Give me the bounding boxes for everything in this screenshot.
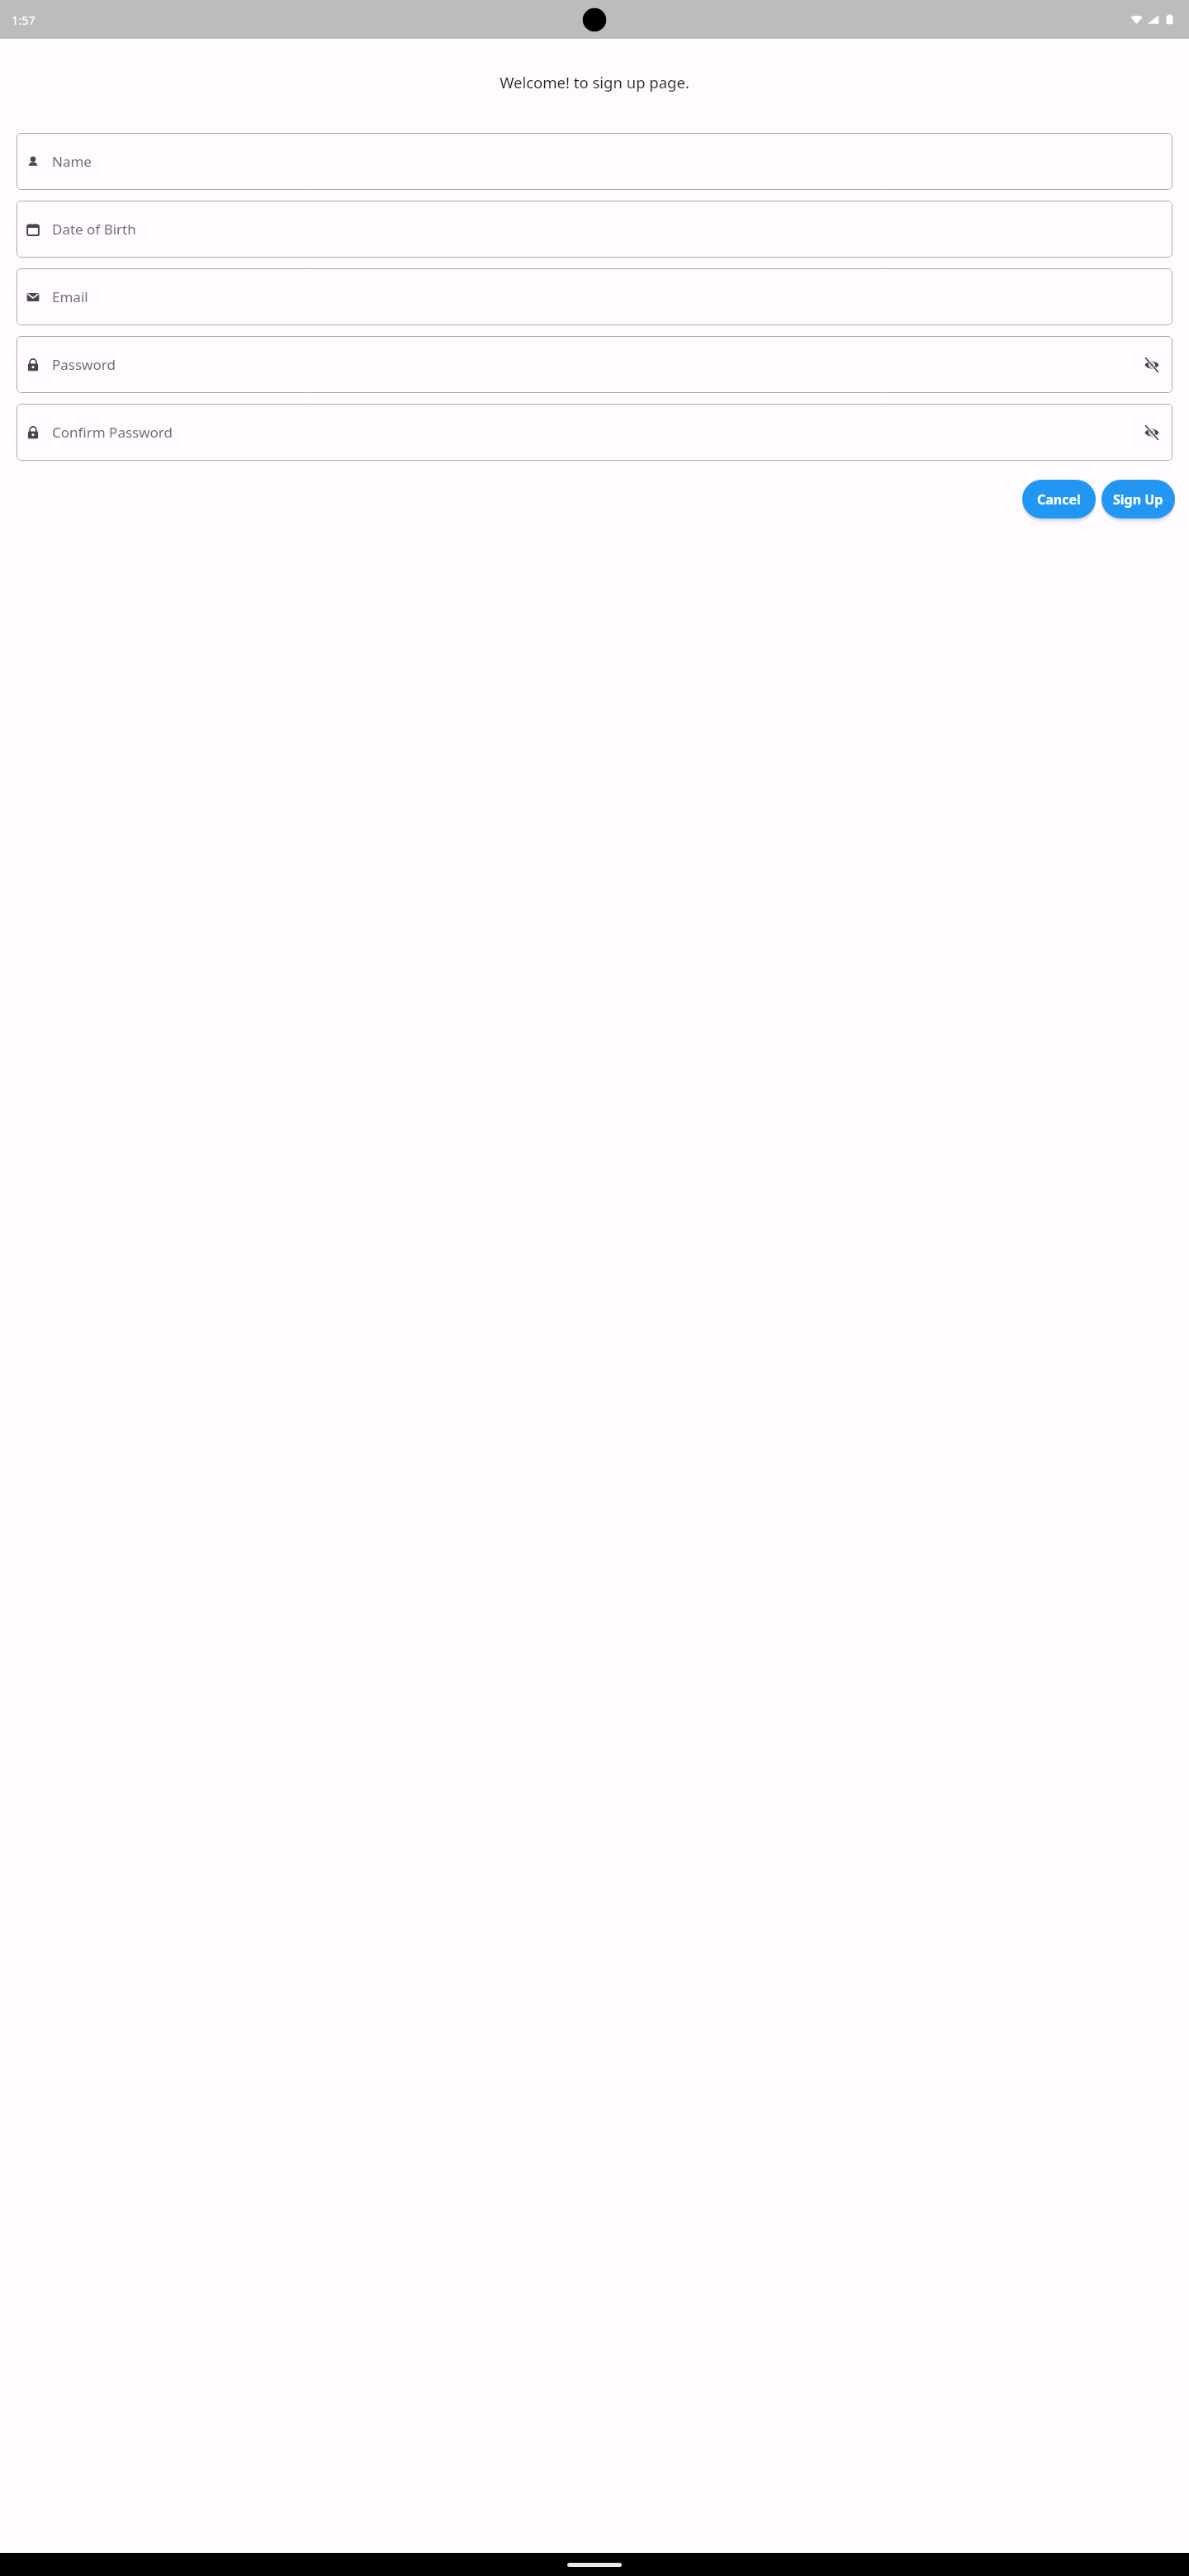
staticText: Sign Up bbox=[1113, 490, 1163, 509]
staticText: Cancel bbox=[1037, 490, 1081, 509]
button[interactable]: Confirm Password bbox=[17, 404, 1172, 461]
staticText: Password bbox=[52, 355, 116, 374]
staticText: Welcome! to sign up page. bbox=[500, 72, 689, 92]
button[interactable]: Email bbox=[17, 268, 1172, 325]
button[interactable]: Name bbox=[17, 133, 1172, 190]
staticText: Date of Birth bbox=[52, 220, 136, 239]
staticText: Name bbox=[52, 152, 92, 171]
button[interactable]: Sign Up bbox=[1101, 480, 1175, 519]
button[interactable]: Date of Birth bbox=[17, 201, 1172, 258]
button[interactable]: Password bbox=[17, 336, 1172, 393]
button[interactable]: Show password bbox=[1143, 424, 1161, 442]
staticText: Email bbox=[52, 287, 88, 306]
staticText: 1:57 bbox=[12, 12, 36, 28]
button[interactable]: Cancel bbox=[1022, 480, 1096, 519]
button[interactable]: Show password bbox=[1143, 356, 1161, 374]
staticText: Confirm Password bbox=[52, 423, 173, 442]
